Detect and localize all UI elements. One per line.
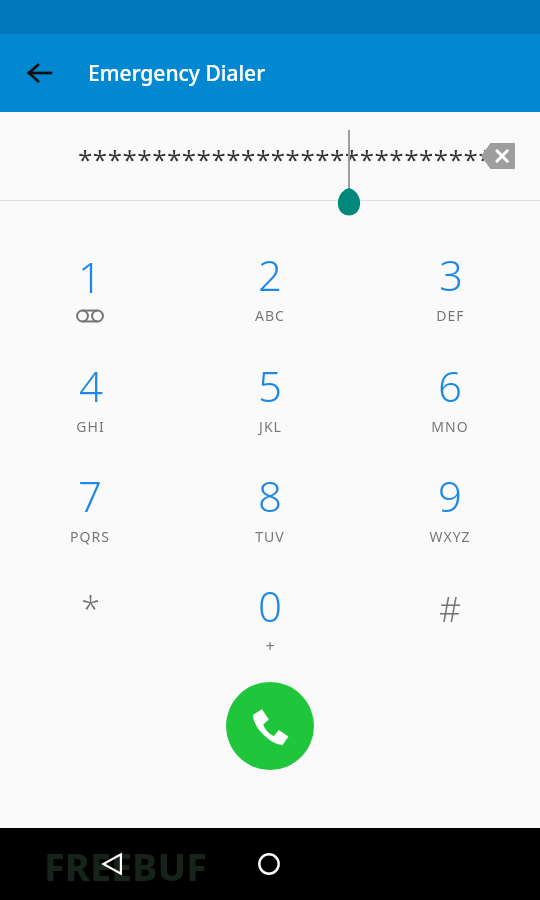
staticText: ABC bbox=[255, 306, 285, 325]
staticText: * bbox=[81, 586, 100, 632]
staticText: FREEBUF bbox=[44, 840, 207, 892]
button[interactable]: * bbox=[0, 565, 180, 669]
staticText: DEF bbox=[436, 306, 465, 325]
button[interactable]: 7 bbox=[0, 454, 180, 558]
button[interactable]: 4 bbox=[0, 344, 180, 448]
button[interactable]: Back bbox=[85, 836, 141, 892]
button[interactable]: # bbox=[360, 565, 540, 669]
staticText: 1 bbox=[78, 248, 102, 305]
button[interactable]: 9 bbox=[360, 454, 540, 558]
staticText: 4 bbox=[79, 357, 103, 414]
staticText: GHI bbox=[76, 417, 105, 436]
staticText: 9 bbox=[438, 467, 462, 524]
button[interactable]: Home bbox=[241, 836, 297, 892]
button[interactable]: Call bbox=[226, 682, 314, 770]
button[interactable]: 3 bbox=[360, 233, 540, 337]
staticText: 8 bbox=[258, 467, 282, 524]
button[interactable]: Back bbox=[14, 47, 66, 99]
staticText: 2 bbox=[258, 246, 282, 303]
staticText: # bbox=[439, 586, 461, 632]
staticText: 7 bbox=[78, 467, 102, 524]
staticText: 0 bbox=[258, 577, 282, 634]
staticText: WXYZ bbox=[429, 527, 471, 546]
staticText: TUV bbox=[255, 527, 285, 546]
staticText: 5 bbox=[258, 357, 282, 414]
staticText: JKL bbox=[259, 417, 282, 436]
button[interactable]: 2 bbox=[180, 233, 360, 337]
button[interactable]: 0 bbox=[180, 565, 360, 669]
button[interactable]: 1 bbox=[0, 233, 180, 337]
staticText: PQRS bbox=[70, 527, 110, 546]
button[interactable]: 5 bbox=[180, 344, 360, 448]
staticText: 3 bbox=[439, 246, 463, 303]
staticText: ***************************** bbox=[78, 141, 508, 176]
button[interactable]: Delete bbox=[472, 130, 524, 182]
staticText: Emergency Dialer bbox=[88, 59, 266, 88]
button[interactable]: 8 bbox=[180, 454, 360, 558]
staticText: 6 bbox=[438, 357, 462, 414]
staticText: + bbox=[265, 635, 276, 657]
staticText: MNO bbox=[431, 417, 469, 436]
button[interactable]: 6 bbox=[360, 344, 540, 448]
